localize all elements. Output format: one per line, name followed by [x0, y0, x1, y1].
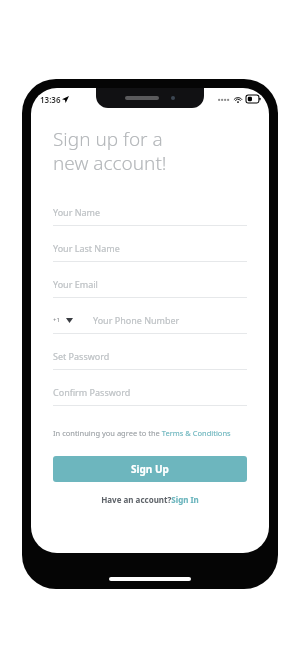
- staticText: Your Phone Number: [93, 314, 180, 326]
- button[interactable]: Confirm Password: [53, 379, 247, 415]
- staticText: Set Password: [53, 350, 110, 362]
- staticText: +1: [53, 316, 60, 324]
- button[interactable]: Your Email: [53, 271, 247, 307]
- button[interactable]: Your Name: [53, 199, 247, 235]
- staticText: 13:36: [40, 94, 61, 105]
- staticText: Your Last Name: [53, 242, 120, 254]
- other: Select country code: [66, 317, 73, 323]
- button[interactable]: In continuing you agree to the Terms & C…: [53, 428, 247, 438]
- button[interactable]: Set Password: [53, 343, 247, 379]
- staticText: Confirm Password: [53, 386, 131, 398]
- staticText: Your Email: [53, 278, 98, 290]
- staticText: Sign up for a new account!: [53, 126, 167, 175]
- button[interactable]: Have an account?Sign In: [101, 494, 199, 505]
- button[interactable]: Sign Up: [53, 456, 247, 482]
- button[interactable]: +1: [53, 307, 247, 343]
- staticText: Sign Up: [131, 462, 169, 476]
- staticText: Your Name: [53, 206, 101, 218]
- button[interactable]: Your Last Name: [53, 235, 247, 271]
